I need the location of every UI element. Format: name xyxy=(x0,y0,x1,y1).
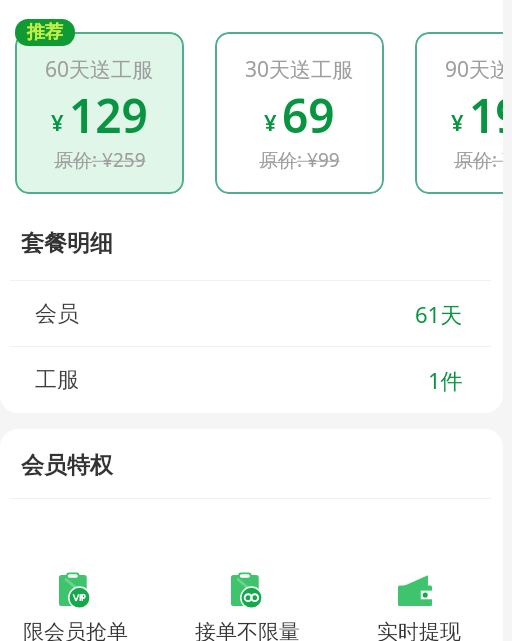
staticText: 推荐 xyxy=(27,21,63,44)
staticText: 原价: ¥99 xyxy=(259,147,340,173)
staticText: 61天 xyxy=(415,299,463,329)
button[interactable]: 90天送工服 xyxy=(415,32,503,194)
button[interactable]: 工服 xyxy=(0,347,503,412)
other: 实时提现 xyxy=(398,575,432,606)
button[interactable]: 60天送工服 xyxy=(15,32,184,194)
staticText: ¥ xyxy=(264,107,277,137)
staticText: 套餐明细 xyxy=(21,229,113,258)
other: 接单不限量 xyxy=(231,572,259,606)
staticText: ¥ xyxy=(451,107,464,137)
staticText: 原价: ¥299 xyxy=(454,147,503,173)
staticText: 90天送工服 xyxy=(445,55,503,84)
staticText: 60天送工服 xyxy=(45,55,154,84)
staticText: 实时提现 xyxy=(377,619,461,641)
other: 限会员抢单 xyxy=(59,572,87,606)
button[interactable]: 30天送工服 xyxy=(215,32,384,194)
staticText: 1件 xyxy=(428,365,463,395)
button[interactable]: 推荐 xyxy=(15,19,75,46)
staticText: 工服 xyxy=(35,366,79,394)
button[interactable]: 限会员抢单 xyxy=(0,572,161,641)
staticText: 会员 xyxy=(35,300,79,328)
staticText: 129 xyxy=(69,84,148,147)
staticText: 原价: ¥259 xyxy=(54,147,146,173)
button[interactable]: 会员 xyxy=(0,281,503,346)
staticText: 会员特权 xyxy=(21,451,113,480)
button[interactable]: 接单不限量 xyxy=(161,572,333,641)
staticText: ¥ xyxy=(51,107,64,137)
staticText: 限会员抢单 xyxy=(23,619,128,641)
staticText: 199 xyxy=(469,84,503,147)
staticText: 30天送工服 xyxy=(245,55,354,84)
staticText: 接单不限量 xyxy=(195,619,300,641)
button[interactable]: 实时提现 xyxy=(333,572,503,641)
staticText: 69 xyxy=(282,84,335,147)
